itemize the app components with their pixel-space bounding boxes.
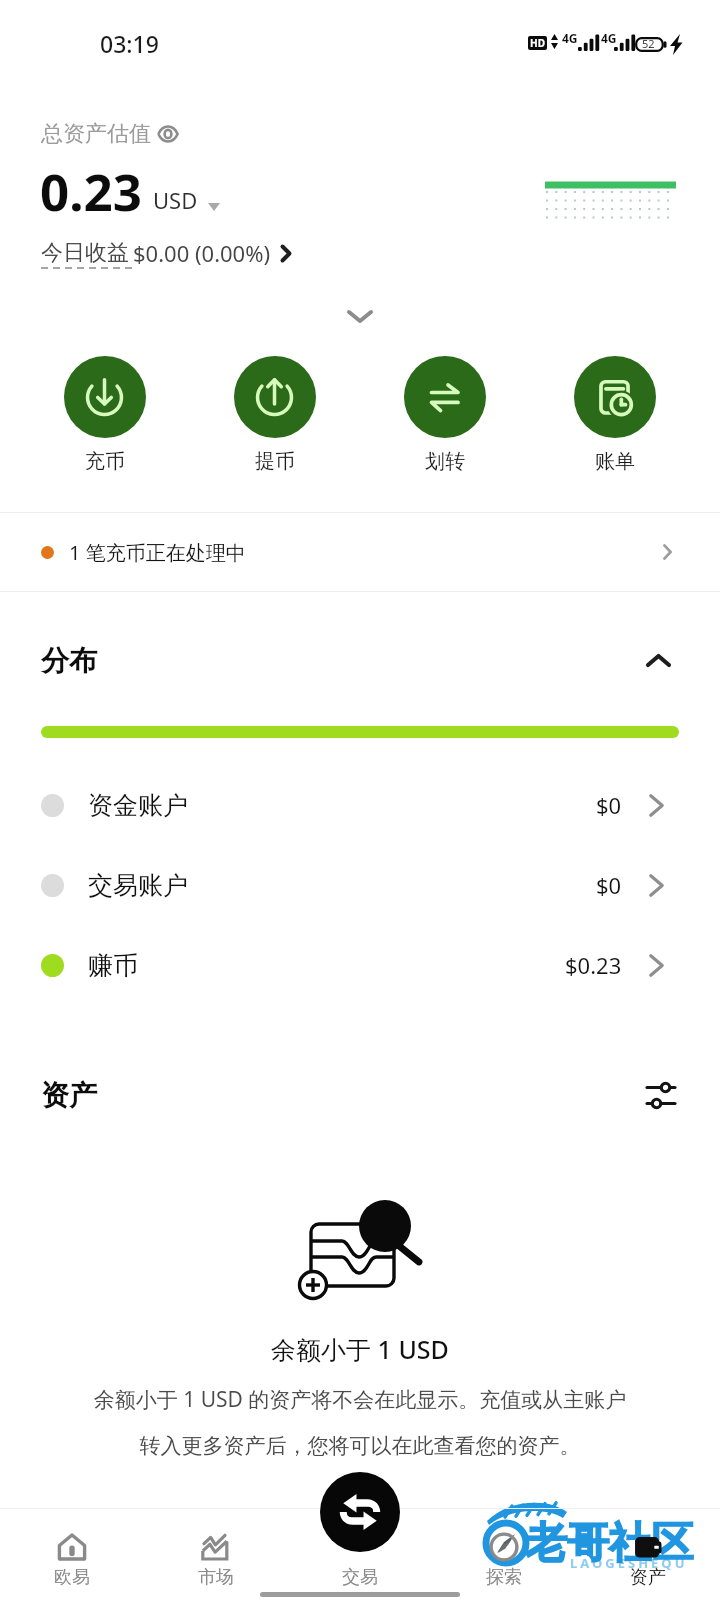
button[interactable]: 欧易 xyxy=(0,1508,144,1589)
staticText: 探索 xyxy=(486,1566,522,1589)
staticText: 市场 xyxy=(198,1566,234,1589)
staticText: 交易账户 xyxy=(88,870,188,901)
button[interactable]: 交易 xyxy=(320,1472,400,1552)
button[interactable]: 资产 xyxy=(576,1508,720,1589)
button[interactable]: 筛选 xyxy=(640,1074,682,1116)
staticText: 余额小于 1 USD xyxy=(0,1332,720,1366)
button[interactable]: 划转 xyxy=(385,356,505,474)
button[interactable]: 分布 xyxy=(0,631,720,689)
button[interactable]: 账单 xyxy=(555,356,675,474)
staticText: 分布 xyxy=(41,643,97,678)
staticText: LAOGESHEQU xyxy=(570,1554,688,1572)
staticText: 1 笔充币正在处理中 xyxy=(69,539,246,566)
staticText: $0.00 (0.00%) xyxy=(133,238,271,268)
staticText: 03:19 xyxy=(100,28,159,59)
staticText: 老哥社区 xyxy=(525,1517,693,1570)
staticText: 交易 xyxy=(342,1566,378,1589)
staticText: 资产 xyxy=(630,1566,666,1589)
staticText: $0 xyxy=(596,870,622,900)
staticText: 4G xyxy=(562,30,578,46)
button[interactable]: 1 笔充币正在处理中 xyxy=(0,513,720,591)
button[interactable]: 交易账户 xyxy=(0,845,720,925)
staticText: 4G xyxy=(601,30,617,46)
staticText: 今日收益 xyxy=(41,239,129,267)
staticText: 欧易 xyxy=(54,1566,90,1589)
staticText: HD xyxy=(530,36,545,50)
button[interactable]: 今日收益 xyxy=(41,238,291,268)
staticText: 52 xyxy=(642,36,655,51)
staticText: 资产 xyxy=(41,1078,97,1113)
staticText: $0.23 xyxy=(565,950,622,980)
staticText: $0 xyxy=(596,790,622,820)
button[interactable]: 充币 xyxy=(45,356,165,474)
staticText: USD xyxy=(153,185,198,215)
button[interactable]: 赚币 xyxy=(0,925,720,1005)
button[interactable]: 交易 xyxy=(288,1508,432,1589)
staticText: 资金账户 xyxy=(88,790,188,821)
button[interactable]: 提币 xyxy=(215,356,335,474)
button[interactable]: 探索 xyxy=(432,1508,576,1589)
button[interactable]: 市场 xyxy=(144,1508,288,1589)
staticText: 余额小于 1 USD 的资产将不会在此显示。充值或从主账户 转入更多资产后，您将… xyxy=(0,1385,720,1459)
button[interactable]: 总资产估值 xyxy=(41,120,179,148)
staticText: 赚币 xyxy=(88,950,138,981)
button[interactable]: 资金账户 xyxy=(0,765,720,845)
staticText: 充币 xyxy=(85,449,125,474)
button[interactable]: Expand xyxy=(0,296,720,336)
staticText: 账单 xyxy=(595,449,635,474)
staticText: 0.23 xyxy=(40,156,142,225)
staticText: 划转 xyxy=(425,449,465,474)
staticText: 提币 xyxy=(255,449,295,474)
staticText: 总资产估值 xyxy=(41,120,151,148)
